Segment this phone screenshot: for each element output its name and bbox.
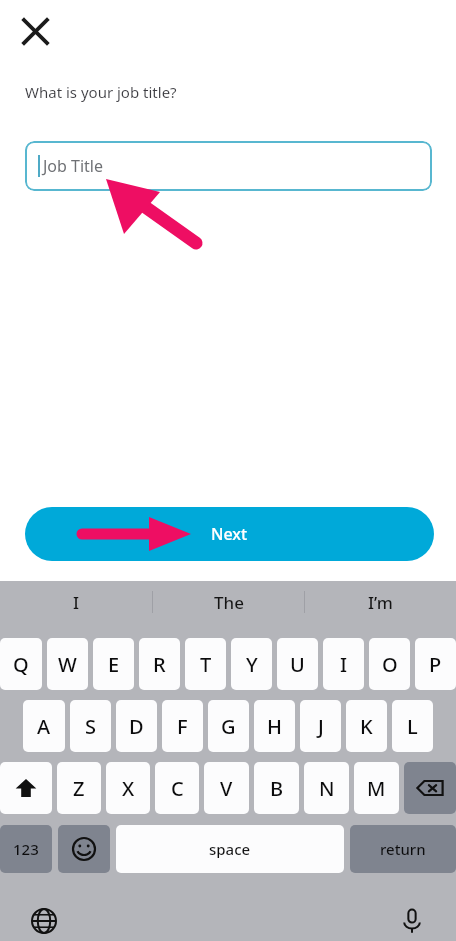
button[interactable]: P: [415, 638, 456, 690]
staticText: I’m: [368, 591, 393, 614]
button[interactable]: X: [106, 762, 150, 814]
button[interactable]: B: [254, 762, 299, 814]
staticText: Job Title: [43, 155, 104, 177]
button[interactable]: space: [116, 825, 344, 873]
button[interactable]: T: [185, 638, 226, 690]
staticText: X: [122, 775, 135, 802]
button[interactable]: Backspace: [404, 762, 456, 814]
button[interactable]: Shift: [0, 762, 52, 814]
staticText: What is your job title?: [25, 82, 177, 102]
staticText: The: [214, 591, 244, 614]
button[interactable]: Emoji: [58, 825, 110, 873]
button[interactable]: E: [93, 638, 134, 690]
button[interactable]: R: [139, 638, 180, 690]
button[interactable]: W: [47, 638, 88, 690]
staticText: S: [85, 713, 96, 740]
staticText: R: [153, 651, 166, 678]
button[interactable]: The: [153, 581, 304, 623]
staticText: I: [73, 591, 80, 614]
staticText: space: [209, 839, 251, 859]
staticText: return: [380, 839, 426, 859]
button[interactable]: A: [23, 700, 65, 752]
button[interactable]: Q: [0, 638, 42, 690]
staticText: H: [267, 713, 282, 740]
button[interactable]: 123: [0, 825, 52, 873]
button[interactable]: C: [155, 762, 199, 814]
staticText: J: [318, 713, 324, 740]
staticText: N: [319, 775, 335, 802]
staticText: T: [200, 651, 212, 678]
button[interactable]: U: [277, 638, 318, 690]
button[interactable]: Change keyboard: [0, 901, 88, 941]
button[interactable]: G: [208, 700, 249, 752]
button[interactable]: H: [254, 700, 295, 752]
button[interactable]: K: [346, 700, 387, 752]
staticText: Q: [13, 651, 29, 678]
staticText: V: [220, 775, 233, 802]
staticText: I: [340, 651, 348, 678]
staticText: U: [290, 651, 305, 678]
staticText: P: [429, 651, 442, 678]
button[interactable]: Close: [13, 9, 58, 54]
button[interactable]: V: [204, 762, 249, 814]
button[interactable]: M: [354, 762, 399, 814]
staticText: Y: [246, 651, 258, 678]
staticText: M: [367, 775, 386, 802]
staticText: K: [360, 713, 373, 740]
button[interactable]: J: [300, 700, 341, 752]
button[interactable]: L: [392, 700, 433, 752]
button[interactable]: I’m: [305, 581, 456, 623]
button[interactable]: Dictation: [368, 901, 456, 941]
button[interactable]: Y: [231, 638, 272, 690]
staticText: E: [108, 651, 120, 678]
button[interactable]: Job Title: [25, 141, 432, 191]
staticText: O: [382, 651, 398, 678]
staticText: B: [270, 775, 284, 802]
button[interactable]: D: [116, 700, 157, 752]
staticText: F: [177, 713, 188, 740]
staticText: G: [221, 713, 236, 740]
button[interactable]: Z: [57, 762, 101, 814]
staticText: A: [37, 713, 51, 740]
button[interactable]: I: [323, 638, 364, 690]
staticText: D: [129, 713, 144, 740]
button[interactable]: F: [162, 700, 203, 752]
staticText: L: [407, 713, 418, 740]
staticText: Next: [211, 523, 248, 545]
staticText: Z: [73, 775, 85, 802]
button[interactable]: Next: [25, 507, 434, 561]
button[interactable]: I: [0, 581, 152, 623]
button[interactable]: S: [70, 700, 111, 752]
button[interactable]: N: [304, 762, 349, 814]
button[interactable]: return: [350, 825, 456, 873]
button[interactable]: O: [369, 638, 410, 690]
staticText: C: [171, 775, 184, 802]
staticText: W: [58, 651, 77, 678]
staticText: 123: [13, 839, 39, 859]
